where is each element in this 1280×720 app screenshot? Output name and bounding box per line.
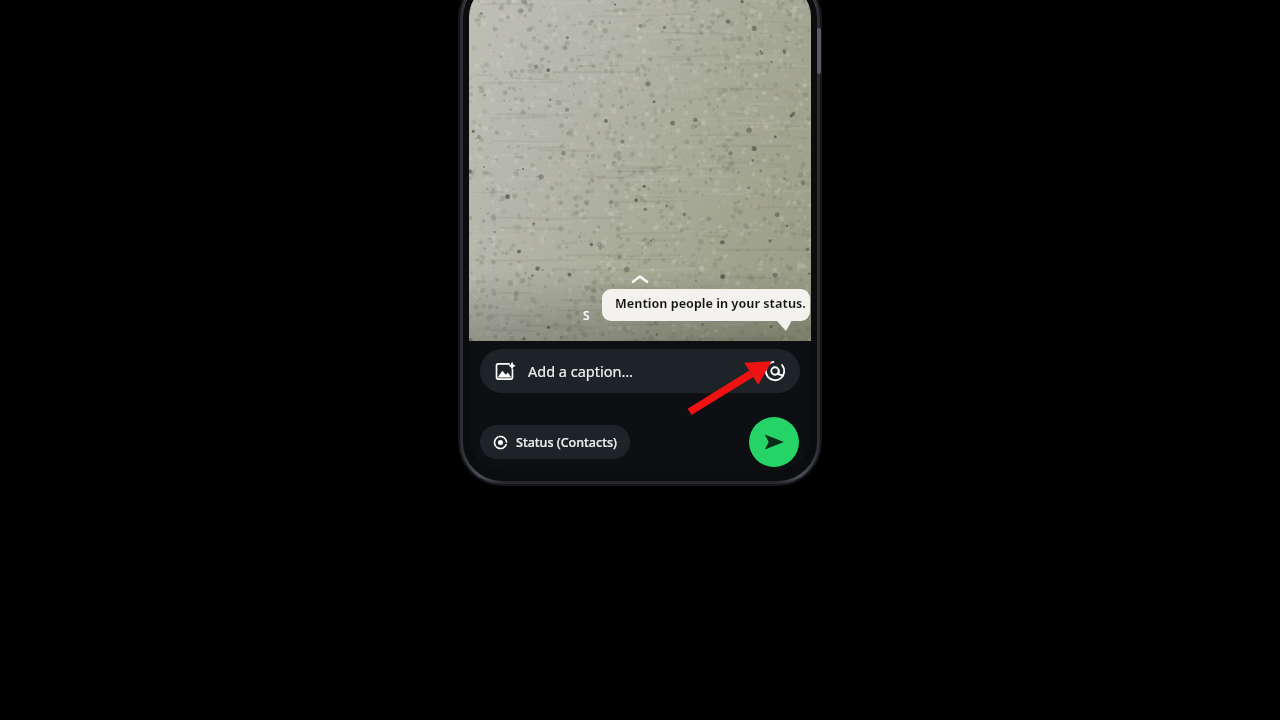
other: Add sticker bbox=[494, 361, 515, 382]
button[interactable]: Status (Contacts) bbox=[480, 425, 630, 459]
button[interactable]: Mention bbox=[764, 360, 786, 382]
staticText: Add a caption… bbox=[528, 361, 633, 381]
button[interactable]: Add sticker bbox=[480, 349, 800, 393]
button[interactable]: Expand bbox=[629, 272, 651, 286]
staticText: Mention people in your status. bbox=[615, 295, 806, 312]
staticText: Status (Contacts) bbox=[516, 434, 617, 451]
staticText: S bbox=[583, 307, 590, 323]
button[interactable]: Send bbox=[749, 417, 799, 467]
